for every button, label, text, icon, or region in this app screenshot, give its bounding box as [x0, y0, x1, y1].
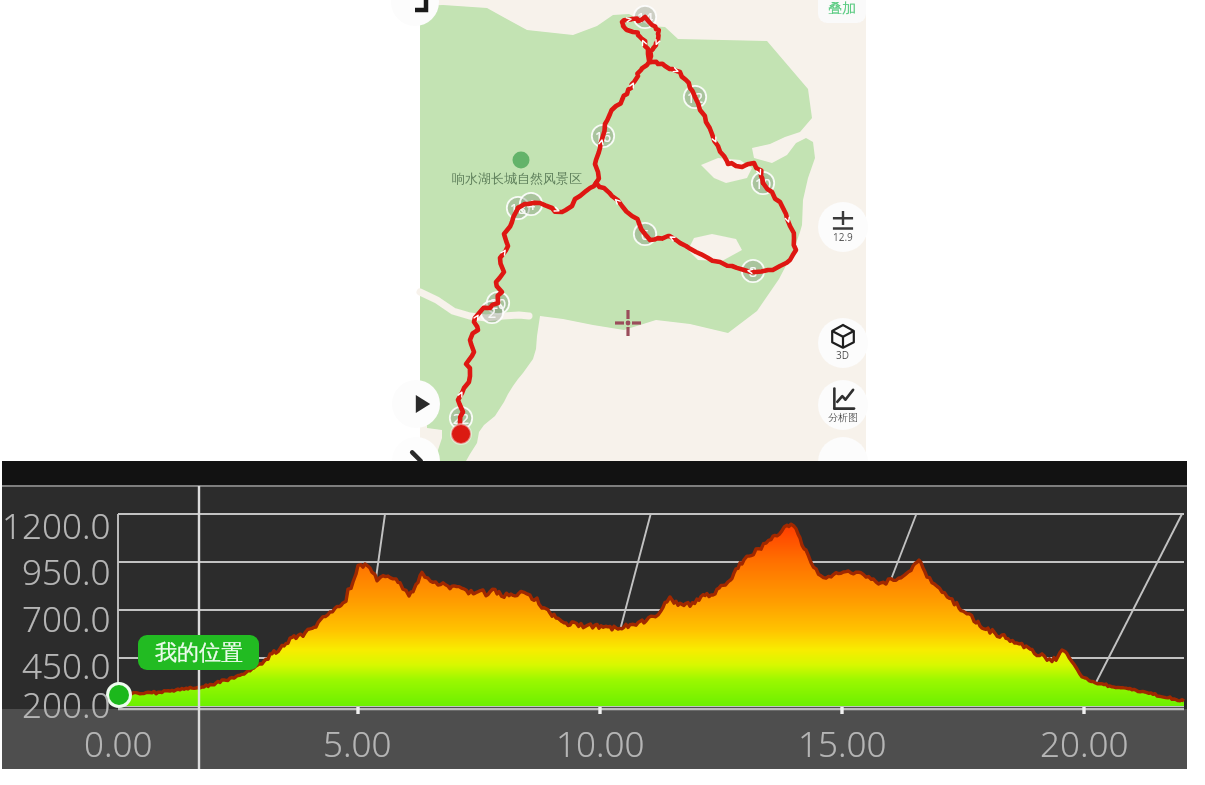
staticText: 14	[637, 8, 654, 27]
staticText: 1200.0	[2, 502, 111, 550]
staticText: 10.00	[556, 720, 645, 768]
staticText: 16	[595, 127, 612, 146]
staticText: 18	[510, 199, 527, 218]
button[interactable]: 3D	[818, 318, 868, 368]
button[interactable]: Back	[391, 0, 439, 26]
staticText: 22	[453, 409, 470, 428]
staticText: 5.00	[323, 720, 392, 768]
staticText: 8	[749, 262, 758, 281]
staticText: 2	[488, 303, 497, 322]
staticText: 3D	[836, 348, 850, 362]
button[interactable]: 我的位置	[138, 635, 259, 670]
staticText: 6	[641, 225, 650, 244]
staticText: 4	[527, 195, 536, 214]
staticText: 叠加	[828, 0, 856, 18]
staticText: 700.0	[22, 595, 111, 643]
staticText: 0.00	[84, 720, 153, 768]
staticText: 12	[687, 88, 704, 107]
staticText: 200.0	[22, 681, 111, 729]
staticText: 10	[755, 174, 772, 193]
button[interactable]: 分析图	[818, 380, 868, 430]
staticText: 我的位置	[155, 639, 243, 667]
staticText: 分析图	[828, 411, 858, 424]
button[interactable]: 12.9	[818, 202, 868, 252]
button[interactable]: Locate me	[392, 437, 440, 485]
staticText: 20	[490, 294, 507, 313]
button[interactable]: Play track	[392, 380, 440, 428]
staticText: 12.9	[833, 230, 853, 244]
staticText: 950.0	[22, 548, 111, 596]
button[interactable]: 叠加	[818, 0, 866, 23]
button[interactable]: More tools	[818, 437, 868, 487]
staticText: 响水湖长城自然风景区	[452, 170, 582, 186]
staticText: 15.00	[798, 720, 887, 768]
staticText: 450.0	[22, 642, 111, 690]
staticText: 20.00	[1040, 720, 1129, 768]
